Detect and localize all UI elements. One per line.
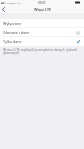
staticText: LTE	[17, 1, 21, 4]
staticText: Tylko dane	[3, 39, 22, 44]
button[interactable]: Wyłączone	[0, 19, 84, 28]
staticText: Wyłączone	[3, 21, 22, 26]
staticText: Orange	[7, 1, 16, 4]
staticText: 09:41	[38, 1, 46, 5]
staticText: Głosowe i dane	[3, 30, 30, 35]
button[interactable]: Tylko dane	[0, 37, 84, 46]
button[interactable]: Głosowe i dane	[0, 28, 84, 37]
staticText: Włącz LTE	[34, 7, 51, 12]
button[interactable]: Back	[0, 5, 11, 13]
staticText: W sieci LTE szybkość przesyłania danych …	[3, 47, 81, 55]
